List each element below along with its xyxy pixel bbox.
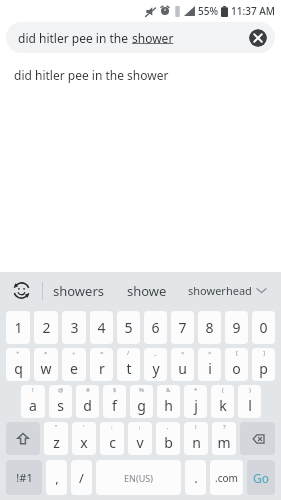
button[interactable]: * bbox=[184, 385, 207, 418]
staticText: 7 bbox=[178, 318, 187, 337]
button[interactable]: & bbox=[157, 385, 180, 418]
button[interactable]: 1 bbox=[6, 311, 30, 344]
staticText: 11:37 AM bbox=[231, 4, 275, 18]
staticText: ( bbox=[222, 386, 224, 394]
button[interactable]: < bbox=[171, 348, 194, 381]
button[interactable]: : bbox=[100, 422, 124, 455]
staticText: [ bbox=[236, 349, 238, 357]
staticText: 0 bbox=[259, 318, 268, 337]
staticText: m bbox=[217, 433, 231, 452]
button[interactable]: ! bbox=[21, 385, 45, 418]
staticText: 55% bbox=[198, 4, 218, 18]
button[interactable]: did hitler pee in the bbox=[6, 22, 275, 53]
button[interactable]: ( bbox=[211, 385, 234, 418]
staticText: # bbox=[86, 386, 90, 394]
button[interactable]: Backspace bbox=[240, 422, 275, 455]
button[interactable]: = bbox=[90, 348, 113, 381]
staticText: & bbox=[166, 386, 171, 394]
button[interactable]: % bbox=[130, 385, 153, 418]
staticText: / bbox=[127, 349, 130, 357]
button[interactable]: , bbox=[46, 460, 67, 495]
staticText: 1 bbox=[14, 318, 23, 337]
button[interactable]: 5 bbox=[117, 311, 140, 344]
button[interactable]: 8 bbox=[198, 311, 221, 344]
button[interactable]: [ bbox=[225, 348, 248, 381]
staticText: g bbox=[137, 396, 146, 415]
staticText: q bbox=[14, 359, 23, 378]
staticText: ) bbox=[249, 386, 251, 394]
staticText: > bbox=[208, 349, 212, 357]
button[interactable]: .com bbox=[210, 460, 243, 495]
staticText: z bbox=[53, 433, 60, 452]
staticText: @ bbox=[58, 386, 64, 394]
button[interactable]: Space bbox=[96, 460, 181, 495]
staticText: t bbox=[126, 359, 132, 378]
button[interactable]: !#1 bbox=[6, 460, 42, 495]
staticText: y bbox=[152, 359, 160, 378]
staticText: Go bbox=[253, 470, 269, 486]
button[interactable]: Shift bbox=[6, 422, 40, 455]
staticText: showers bbox=[53, 282, 105, 300]
staticText: EN(US) bbox=[124, 472, 153, 484]
button[interactable]: > bbox=[198, 348, 221, 381]
button[interactable]: ) bbox=[238, 385, 261, 418]
button[interactable]: . bbox=[185, 460, 206, 495]
staticText: 3 bbox=[70, 318, 79, 337]
staticText: n bbox=[192, 433, 201, 452]
staticText: e bbox=[70, 359, 78, 378]
button[interactable]: @ bbox=[49, 385, 72, 418]
button[interactable]: × bbox=[34, 348, 58, 381]
staticText: % bbox=[139, 386, 144, 394]
button[interactable]: ? bbox=[212, 422, 236, 455]
staticText: ? bbox=[223, 423, 226, 431]
staticText: ÷ bbox=[72, 349, 76, 357]
staticText: , bbox=[167, 423, 169, 431]
staticText: j bbox=[194, 396, 198, 415]
staticText: $ bbox=[113, 386, 117, 394]
button[interactable]: ] bbox=[252, 348, 275, 381]
button[interactable]: + bbox=[6, 348, 30, 381]
staticText: showe bbox=[127, 282, 167, 300]
button[interactable]: Clear search bbox=[249, 29, 267, 47]
button[interactable]: 2 bbox=[34, 311, 58, 344]
button[interactable]: " bbox=[44, 422, 68, 455]
button[interactable]: 4 bbox=[90, 311, 113, 344]
staticText: x bbox=[80, 433, 88, 452]
staticText: . bbox=[194, 469, 198, 487]
button[interactable]: ; bbox=[128, 422, 152, 455]
staticText: 4 bbox=[97, 318, 106, 337]
button[interactable]: / bbox=[71, 460, 92, 495]
button[interactable]: 7 bbox=[171, 311, 194, 344]
button[interactable]: ' bbox=[72, 422, 96, 455]
staticText: h bbox=[164, 396, 173, 415]
staticText: < bbox=[181, 349, 185, 357]
button[interactable]: $ bbox=[103, 385, 126, 418]
button[interactable]: showers bbox=[43, 272, 115, 309]
staticText: s bbox=[57, 396, 64, 415]
staticText: " bbox=[55, 423, 58, 431]
button[interactable]: # bbox=[76, 385, 99, 418]
button[interactable]: _ bbox=[144, 348, 167, 381]
button[interactable]: Go bbox=[247, 460, 275, 495]
button[interactable]: Emoji bbox=[0, 272, 42, 309]
staticText: ; bbox=[139, 423, 141, 431]
staticText: p bbox=[259, 359, 268, 378]
staticText: shower bbox=[132, 30, 174, 46]
staticText: b bbox=[164, 433, 173, 452]
staticText: v bbox=[136, 433, 144, 452]
staticText: i bbox=[208, 359, 212, 378]
button[interactable]: 6 bbox=[144, 311, 167, 344]
button[interactable]: , bbox=[156, 422, 180, 455]
staticText: = bbox=[100, 349, 104, 357]
staticText: 6 bbox=[151, 318, 160, 337]
staticText: + bbox=[16, 349, 20, 357]
button[interactable]: showerhead bbox=[178, 272, 275, 309]
button[interactable]: ! bbox=[184, 422, 208, 455]
button[interactable]: / bbox=[117, 348, 140, 381]
button[interactable]: 0 bbox=[252, 311, 275, 344]
button[interactable]: 9 bbox=[225, 311, 248, 344]
button[interactable]: ÷ bbox=[62, 348, 86, 381]
button[interactable]: did hitler pee in the shower bbox=[14, 67, 169, 83]
button[interactable]: 3 bbox=[62, 311, 86, 344]
button[interactable]: showe bbox=[115, 272, 178, 309]
